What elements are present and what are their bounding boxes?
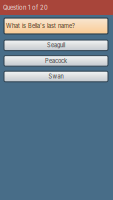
staticText: Peacock: [45, 57, 67, 64]
staticText: What is Bella's last name?: [6, 23, 75, 29]
staticText: Swan: [48, 73, 63, 80]
button[interactable]: Seagull: [4, 40, 108, 51]
staticText: Seagull: [47, 42, 65, 49]
staticText: Question 1 of 20: [3, 4, 48, 11]
button[interactable]: Swan: [4, 71, 108, 82]
button[interactable]: Peacock: [4, 56, 108, 66]
